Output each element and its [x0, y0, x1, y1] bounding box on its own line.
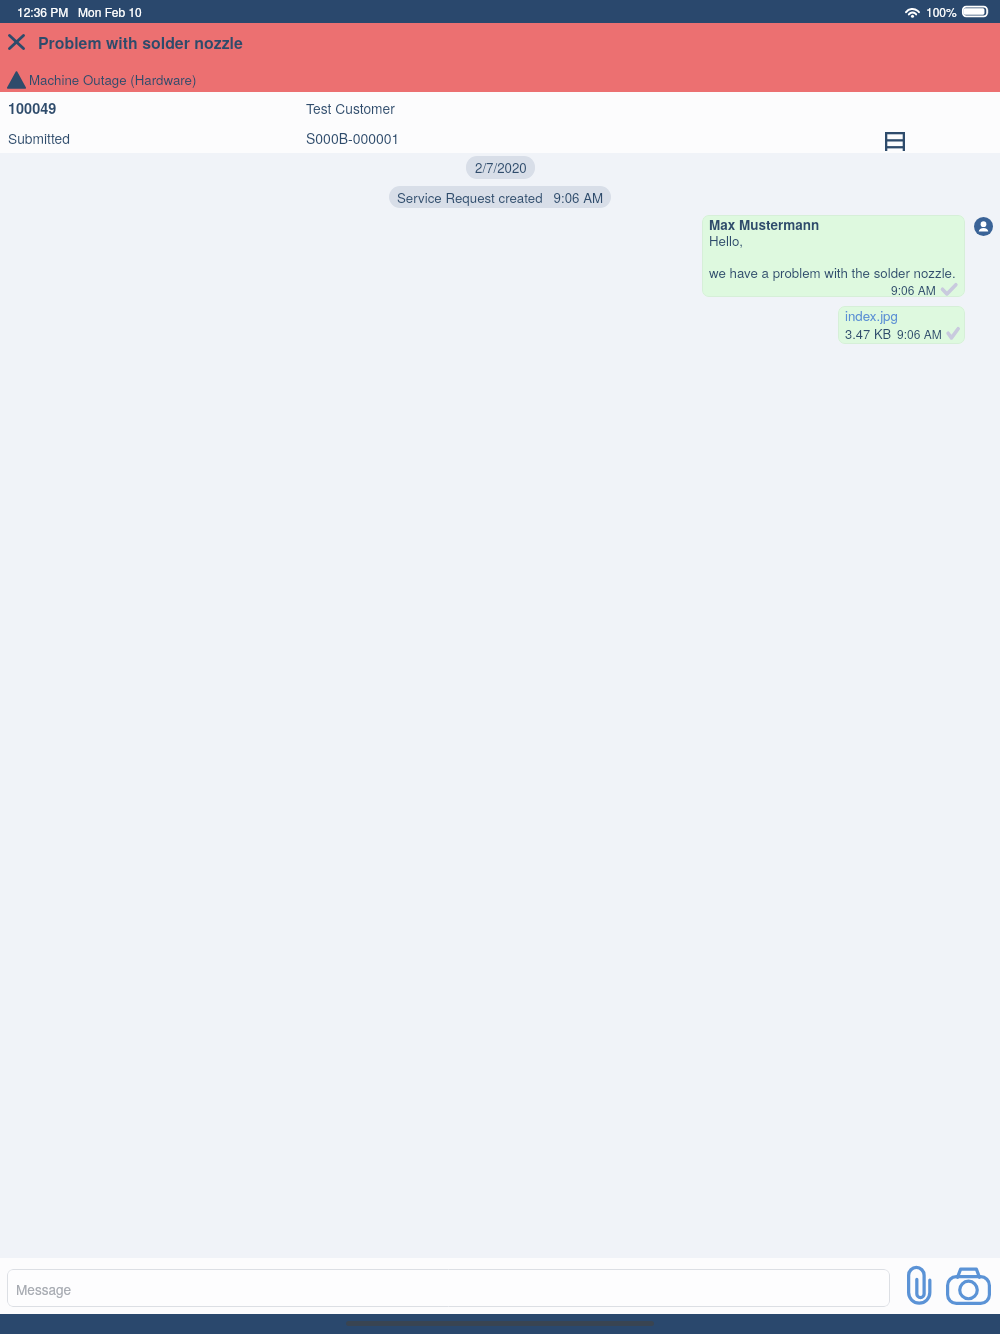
staticText: S000B-000001: [306, 128, 400, 148]
staticText: Hello, we have a problem with the solder…: [709, 233, 956, 281]
staticText: Message: [16, 1279, 72, 1298]
staticText: Mon Feb 10: [78, 3, 142, 20]
staticText: 9:06 AM: [897, 325, 942, 342]
button[interactable]: Message: [7, 1269, 890, 1307]
staticText: Max Mustermann: [709, 218, 820, 234]
staticText: index.jpg: [845, 308, 898, 324]
staticText: Problem with solder nozzle: [38, 31, 243, 54]
staticText: 3.47 KB: [845, 324, 892, 343]
staticText: 100%: [926, 3, 957, 20]
staticText: 12:36 PM: [17, 3, 69, 20]
staticText: 100049: [8, 98, 57, 119]
button[interactable]: index.jpg: [838, 306, 965, 344]
button[interactable]: Take photo: [944, 1265, 993, 1307]
staticText: Machine Outage (Hardware): [29, 70, 197, 89]
button[interactable]: Max Mustermann: [702, 215, 965, 297]
staticText: Test Customer: [306, 98, 395, 118]
staticText: 9:06 AM: [891, 281, 936, 297]
button[interactable]: Close: [0, 25, 33, 59]
staticText: 2/7/2020: [475, 158, 527, 177]
staticText: Service Request created 9:06 AM: [397, 188, 604, 207]
staticText: Submitted: [8, 128, 70, 148]
button[interactable]: Show details table: [873, 119, 917, 163]
button[interactable]: Attach file: [900, 1265, 936, 1307]
